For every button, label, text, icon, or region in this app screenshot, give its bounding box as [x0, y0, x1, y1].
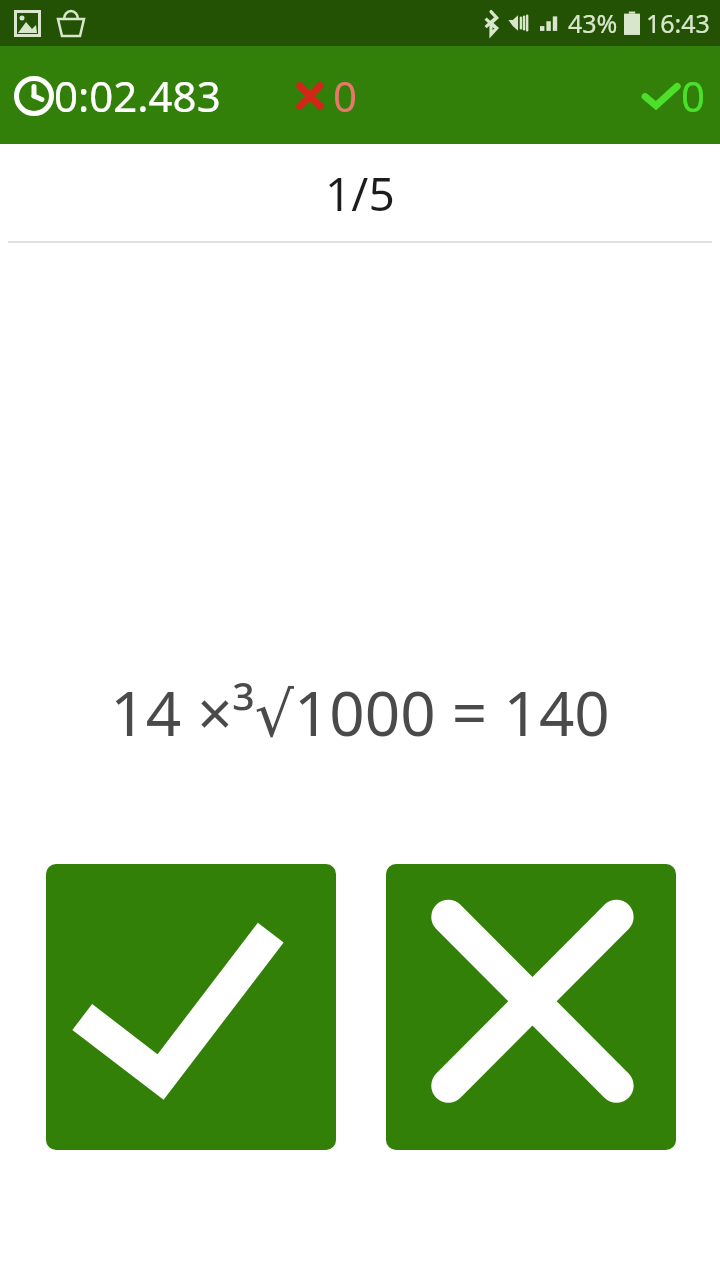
button[interactable]: 0:02.483 [14, 67, 221, 124]
staticText: 43% [568, 6, 618, 40]
button[interactable]: Correct [46, 864, 336, 1150]
staticText: 14 ×³√1000 = 140 [110, 670, 610, 754]
button[interactable]: 1/5 [8, 146, 712, 241]
staticText: 0 [333, 67, 358, 124]
button[interactable]: 0 [643, 67, 706, 124]
staticText: 16:43 [646, 6, 710, 40]
button[interactable]: Wrong [386, 864, 676, 1150]
staticText: 0:02.483 [54, 67, 221, 124]
button[interactable]: 0 [293, 67, 358, 124]
staticText: 1/5 [325, 162, 395, 225]
staticText: 0 [681, 67, 706, 124]
